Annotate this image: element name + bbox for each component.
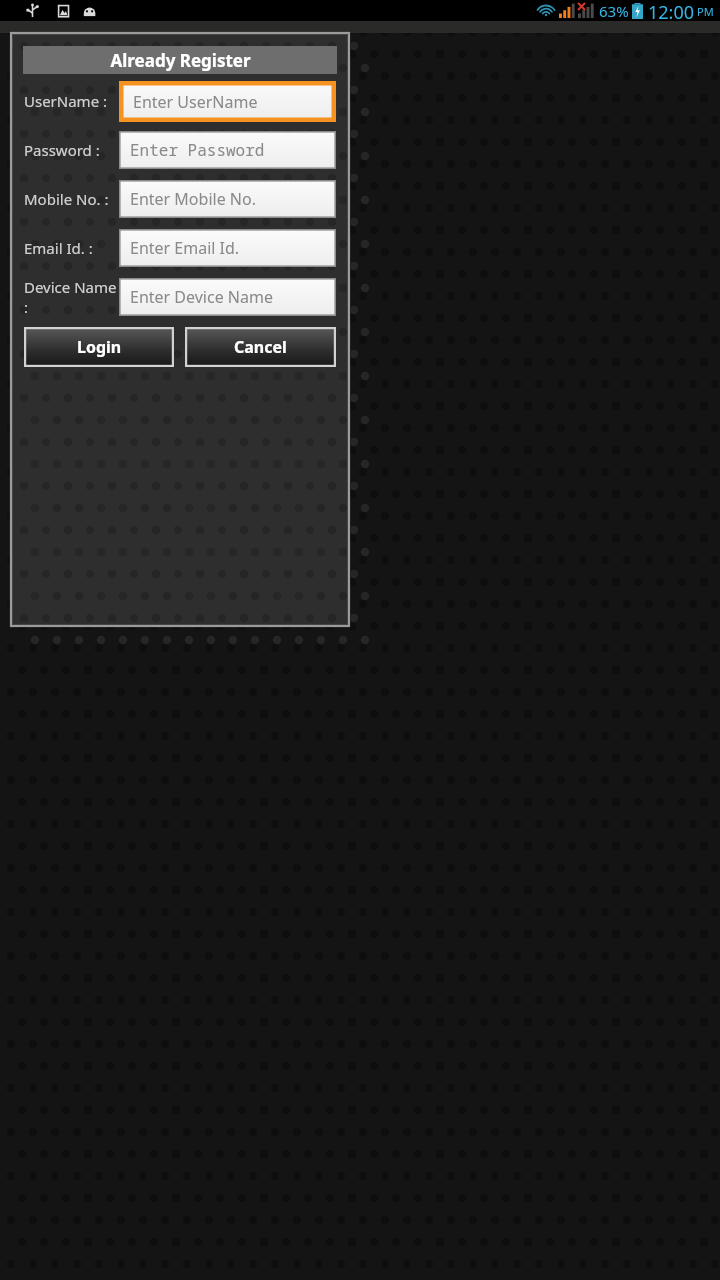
staticText: B xyxy=(10,33,20,53)
button[interactable]: Enter Mobile No. xyxy=(119,180,336,218)
staticText: Already Register xyxy=(110,49,251,72)
staticText: Enter UserName xyxy=(133,91,258,113)
staticText: UserName : xyxy=(24,91,119,111)
button[interactable]: Already Register xyxy=(23,46,337,74)
staticText: Enter Device Name xyxy=(130,286,273,308)
staticText: 12:00 xyxy=(648,0,695,21)
button[interactable]: Enter Device Name xyxy=(119,278,336,316)
staticText: Mobile No. : xyxy=(24,189,119,209)
staticText: 63% xyxy=(599,1,629,21)
button[interactable]: Enter Email Id. xyxy=(119,229,336,267)
button[interactable]: Cancel xyxy=(185,327,336,367)
staticText: Device Name : xyxy=(24,277,119,317)
staticText: Password : xyxy=(24,140,119,160)
staticText: PM xyxy=(697,4,714,19)
staticText: Cancel xyxy=(234,336,287,358)
staticText: Email Id. : xyxy=(24,238,119,258)
button[interactable]: Enter UserName xyxy=(119,81,336,122)
staticText: Enter Mobile No. xyxy=(130,188,256,210)
staticText: Enter Password xyxy=(130,139,265,161)
button[interactable]: Login xyxy=(24,327,174,367)
button[interactable]: Enter Password xyxy=(119,131,336,169)
staticText: Login xyxy=(77,336,122,358)
staticText: Enter Email Id. xyxy=(130,237,240,259)
